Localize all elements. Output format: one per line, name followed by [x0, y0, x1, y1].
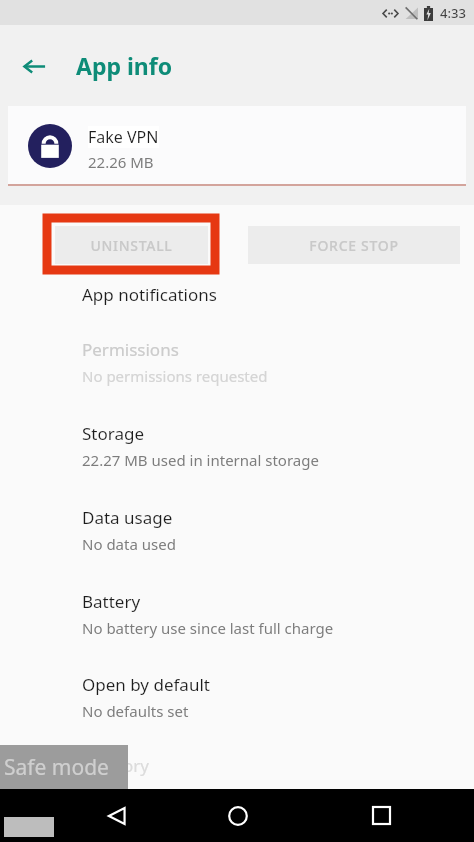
button[interactable]: Recents: [355, 789, 408, 842]
button[interactable]: App notifications: [0, 283, 474, 306]
button[interactable]: Permissions: [0, 338, 474, 386]
staticText: Open by default: [82, 673, 210, 696]
staticText: App info: [76, 50, 173, 81]
staticText: Storage: [82, 422, 145, 445]
button[interactable]: Data usage: [0, 506, 474, 554]
button[interactable]: Home: [211, 789, 264, 842]
button[interactable]: Back: [90, 789, 143, 842]
staticText: Memory: [82, 754, 149, 777]
staticText: Fake VPN: [88, 126, 159, 148]
button[interactable]: Memory: [82, 754, 149, 777]
button[interactable]: Fake VPN: [8, 106, 466, 186]
button[interactable]: Back: [10, 42, 58, 90]
staticText: No data used: [82, 534, 176, 554]
button[interactable]: FORCE STOP: [248, 226, 460, 264]
staticText: No permissions requested: [82, 366, 268, 386]
button[interactable]: Storage: [0, 422, 474, 470]
staticText: No defaults set: [82, 701, 189, 721]
button[interactable]: UNINSTALL: [55, 226, 208, 264]
staticText: FORCE STOP: [309, 236, 399, 255]
staticText: UNINSTALL: [90, 236, 173, 255]
staticText: Safe mode: [4, 753, 109, 782]
staticText: No battery use since last full charge: [82, 618, 334, 638]
staticText: Permissions: [82, 338, 179, 361]
staticText: 22.26 MB: [88, 152, 154, 172]
staticText: 22.27 MB used in internal storage: [82, 450, 319, 470]
staticText: 4:33: [440, 4, 466, 22]
button[interactable]: Open by default: [0, 673, 474, 721]
button[interactable]: Battery: [0, 590, 474, 638]
staticText: Data usage: [82, 506, 173, 529]
staticText: App notifications: [82, 283, 217, 306]
staticText: Battery: [82, 590, 141, 613]
